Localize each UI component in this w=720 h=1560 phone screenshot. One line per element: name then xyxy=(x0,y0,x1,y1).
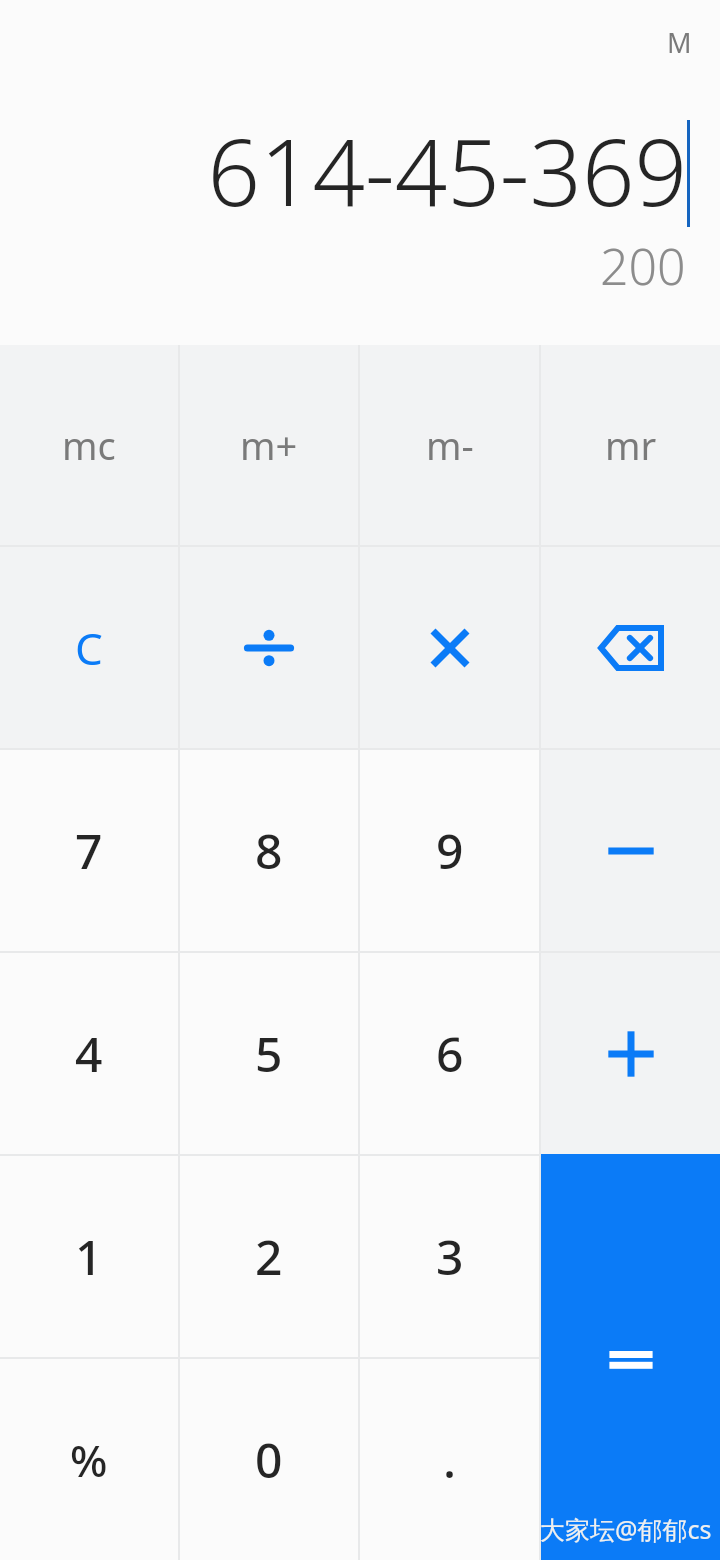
staticText: % xyxy=(70,1430,108,1490)
staticText: mr xyxy=(605,419,657,471)
button[interactable]: C xyxy=(0,547,178,748)
staticText: 3 xyxy=(436,1224,464,1289)
staticText: 0 xyxy=(255,1427,283,1492)
button[interactable]: 5 xyxy=(180,953,358,1154)
button[interactable]: 8 xyxy=(180,750,358,951)
staticText: . xyxy=(443,1427,457,1492)
button[interactable]: 0 xyxy=(180,1359,358,1560)
button[interactable]: Plus xyxy=(541,953,720,1154)
staticText: 2 xyxy=(255,1224,283,1289)
button[interactable]: m- xyxy=(360,345,539,545)
staticText: 614-45-369 xyxy=(207,108,687,233)
staticText: 7 xyxy=(75,818,103,883)
other: Equals xyxy=(601,1327,661,1387)
button[interactable]: 6 xyxy=(360,953,539,1154)
staticText: 大家坛@郁郁cs xyxy=(540,1512,712,1546)
button[interactable]: Backspace xyxy=(541,547,720,748)
button[interactable]: m+ xyxy=(180,345,358,545)
staticText: m+ xyxy=(240,419,298,471)
button[interactable]: mr xyxy=(541,345,720,545)
staticText: 6 xyxy=(436,1021,464,1086)
staticText: m- xyxy=(426,419,474,471)
button[interactable]: 3 xyxy=(360,1156,539,1357)
staticText: 8 xyxy=(255,818,283,883)
staticText: 1 xyxy=(75,1224,103,1289)
button[interactable]: 4 xyxy=(0,953,178,1154)
button[interactable]: . xyxy=(360,1359,539,1560)
button[interactable]: % xyxy=(0,1359,178,1560)
button[interactable]: Minus xyxy=(541,750,720,951)
button[interactable]: 7 xyxy=(0,750,178,951)
button[interactable]: 1 xyxy=(0,1156,178,1357)
staticText: 200 xyxy=(600,232,686,300)
button[interactable]: 9 xyxy=(360,750,539,951)
staticText: mc xyxy=(62,419,116,471)
button[interactable]: Divide xyxy=(180,547,358,748)
button[interactable]: 2 xyxy=(180,1156,358,1357)
button[interactable]: mc xyxy=(0,345,178,545)
staticText: 5 xyxy=(255,1021,283,1086)
staticText: 4 xyxy=(75,1021,103,1086)
staticText: C xyxy=(75,618,103,678)
button[interactable]: Equals xyxy=(541,1154,720,1560)
staticText: M xyxy=(667,24,692,61)
button[interactable]: Multiply xyxy=(360,547,539,748)
staticText: 9 xyxy=(436,818,464,883)
